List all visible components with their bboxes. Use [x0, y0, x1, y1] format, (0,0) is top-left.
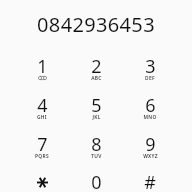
staticText: #: [144, 170, 156, 192]
staticText: ABC: [91, 75, 102, 82]
button[interactable]: 0: [69, 166, 123, 192]
button[interactable]: 9: [123, 127, 177, 166]
staticText: 4: [37, 93, 48, 118]
button[interactable]: 4: [15, 88, 69, 127]
staticText: 0: [91, 170, 102, 192]
staticText: 3: [145, 54, 156, 79]
button[interactable]: Star: [15, 166, 69, 192]
staticText: 0842936453: [37, 11, 155, 38]
staticText: 8: [91, 132, 102, 157]
staticText: 1: [37, 54, 48, 79]
button[interactable]: 3: [123, 49, 177, 88]
staticText: 5: [91, 93, 102, 118]
staticText: 9: [145, 132, 156, 157]
button[interactable]: 7: [15, 127, 69, 166]
staticText: GHI: [37, 114, 47, 121]
button[interactable]: 8: [69, 127, 123, 166]
staticText: MNO: [143, 114, 157, 121]
button[interactable]: 0842936453: [0, 0, 192, 49]
staticText: 6: [145, 93, 156, 118]
staticText: JKL: [92, 114, 101, 121]
button[interactable]: 5: [69, 88, 123, 127]
staticText: DEF: [145, 75, 155, 82]
staticText: 7: [37, 132, 48, 157]
staticText: 2: [91, 54, 102, 79]
staticText: PQRS: [35, 153, 49, 160]
button[interactable]: 1 voicemail: [15, 49, 69, 88]
staticText: TUV: [91, 153, 102, 160]
button[interactable]: 2: [69, 49, 123, 88]
staticText: WXYZ: [143, 153, 158, 160]
button[interactable]: 6: [123, 88, 177, 127]
button[interactable]: Pound: [123, 166, 177, 192]
